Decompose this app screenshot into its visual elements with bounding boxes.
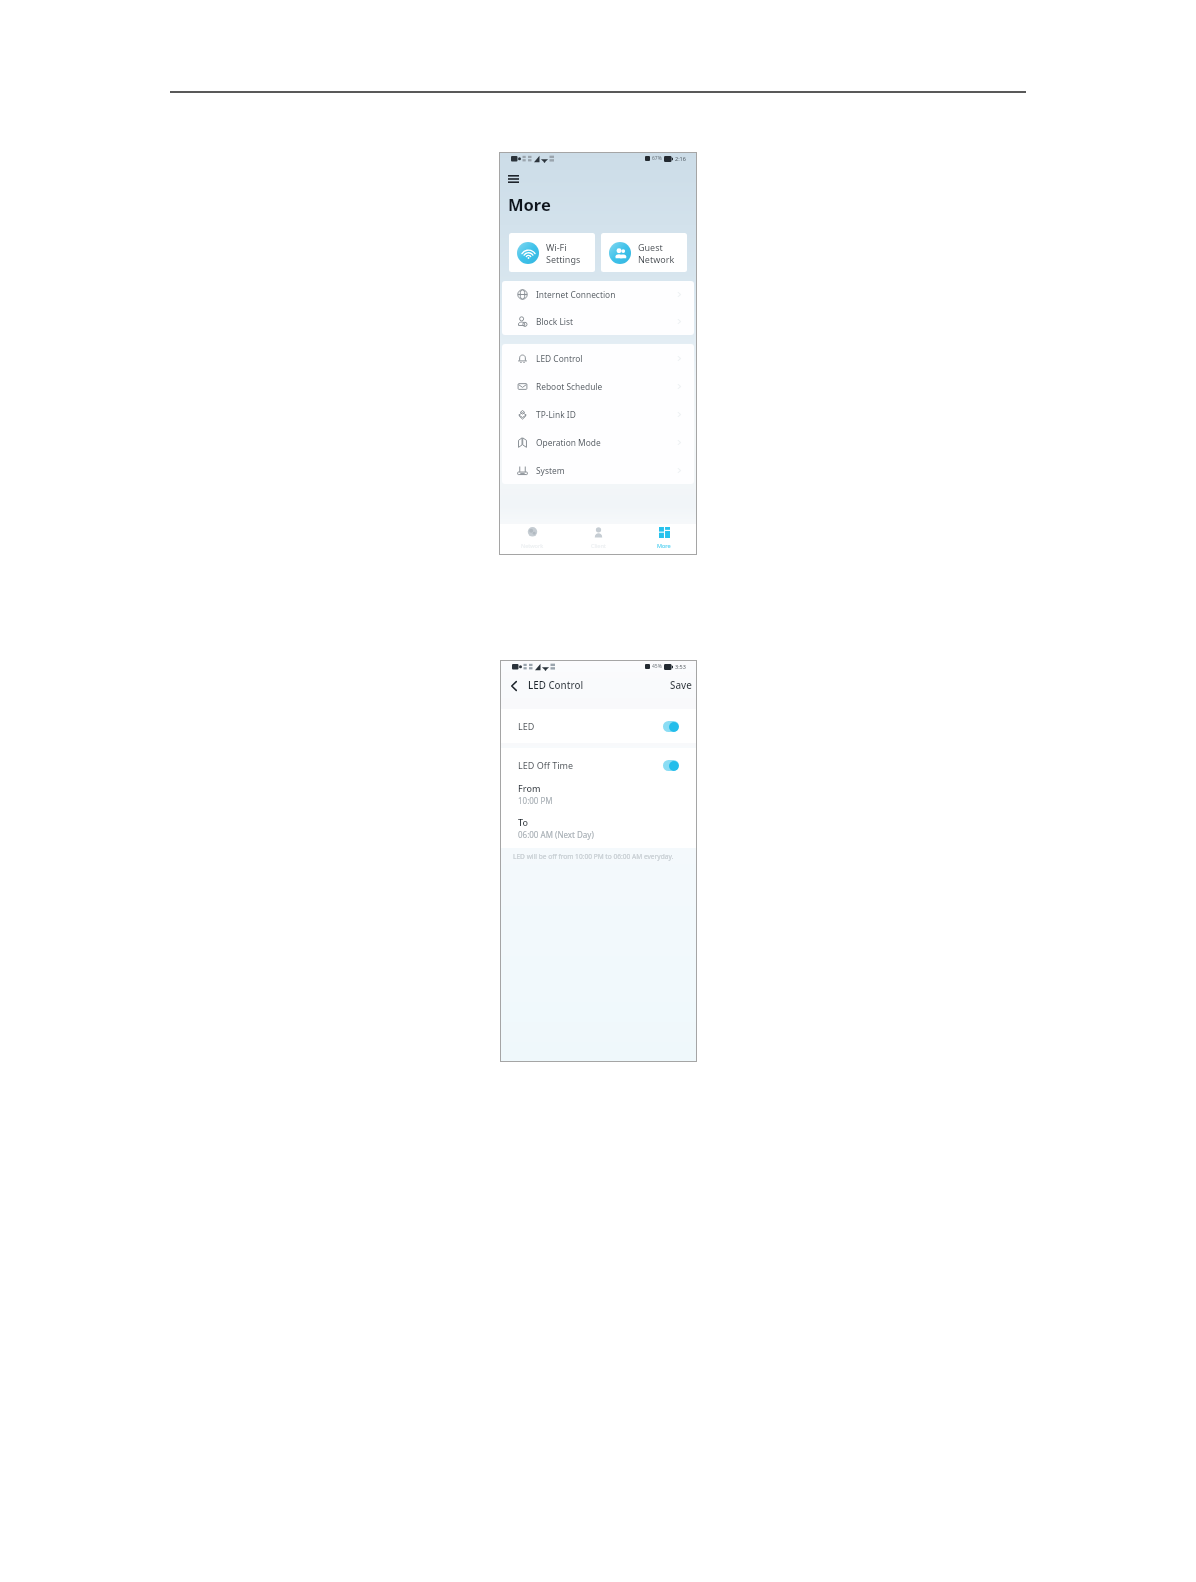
button[interactable]: Block List — [502, 308, 694, 335]
staticText: LED will be off from 10:00 PM to 06:00 A… — [513, 852, 674, 861]
button[interactable]: LED Control — [502, 344, 694, 372]
staticText: Settings — [546, 253, 581, 265]
staticText: TP-Link ID — [536, 409, 576, 420]
staticText: Guest — [638, 241, 663, 253]
staticText: Save — [670, 679, 692, 692]
staticText: More — [508, 193, 551, 215]
button[interactable]: System — [502, 456, 694, 484]
button[interactable]: LED Off Time — [500, 748, 697, 782]
staticText: Client — [591, 542, 606, 549]
staticText: More — [657, 542, 671, 549]
button[interactable]: Reboot Schedule — [502, 372, 694, 400]
staticText: 10:00 PM — [518, 795, 553, 806]
staticText: LED Control — [536, 353, 583, 364]
button[interactable]: Wi-Fi — [509, 233, 595, 272]
button[interactable] — [663, 721, 679, 732]
staticText: 3:53 — [675, 663, 686, 670]
staticText: 06:00 AM (Next Day) — [518, 829, 594, 840]
staticText: From — [518, 782, 541, 794]
button[interactable]: Client — [565, 524, 631, 555]
staticText: LED — [518, 720, 535, 732]
button[interactable]: From — [500, 782, 697, 806]
button[interactable]: Menu — [508, 174, 520, 183]
staticText: LED Control — [528, 679, 584, 692]
staticText: LED Off Time — [518, 759, 574, 771]
button[interactable]: Guest — [601, 233, 687, 272]
staticText: Wi-Fi — [546, 241, 567, 253]
button[interactable]: LED — [500, 709, 697, 743]
staticText: Network — [521, 542, 544, 549]
staticText: 67% — [652, 155, 662, 162]
button[interactable]: Internet Connection — [502, 281, 694, 308]
staticText: System — [536, 465, 565, 476]
button[interactable]: Save — [668, 675, 694, 696]
button[interactable]: To — [500, 816, 697, 840]
staticText: 2:16 — [675, 155, 686, 162]
staticText: Operation Mode — [536, 437, 601, 448]
staticText: Reboot Schedule — [536, 381, 603, 392]
staticText: Network — [638, 253, 675, 265]
staticText: 45% — [652, 663, 662, 670]
button[interactable] — [663, 760, 679, 771]
staticText: Block List — [536, 316, 573, 327]
button[interactable]: Back — [507, 679, 520, 692]
button[interactable]: Network — [499, 524, 565, 555]
button[interactable]: More — [631, 524, 697, 555]
staticText: To — [518, 816, 528, 828]
button[interactable]: Operation Mode — [502, 428, 694, 456]
staticText: Internet Connection — [536, 289, 616, 300]
button[interactable]: TP-Link ID — [502, 400, 694, 428]
